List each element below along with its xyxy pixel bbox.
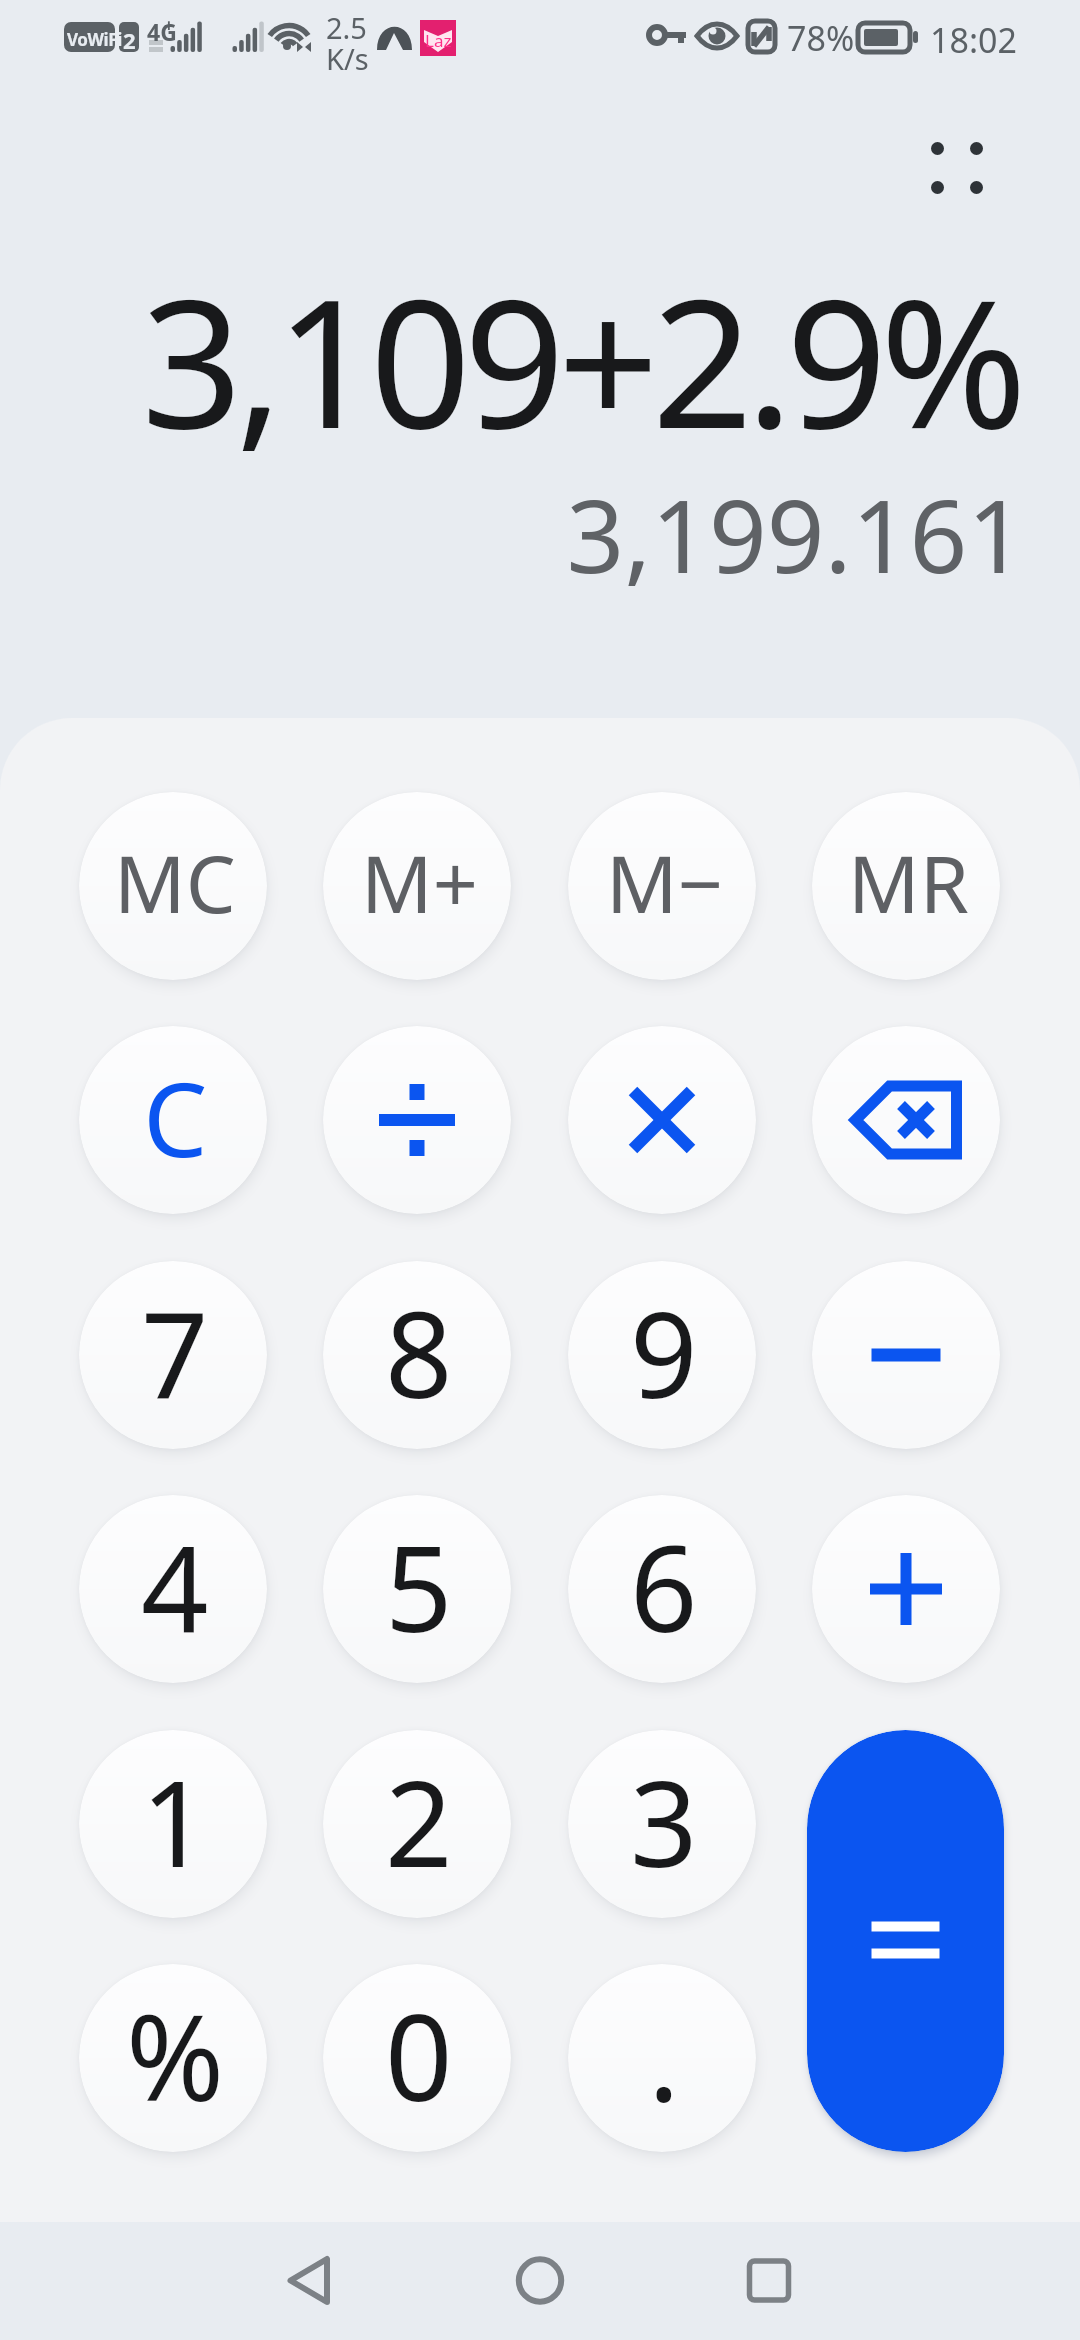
button[interactable]: M−	[568, 792, 756, 980]
staticText: VoWiFi	[67, 28, 122, 51]
staticText: 7	[141, 1272, 209, 1433]
staticText: .	[648, 1975, 680, 2136]
staticText: MR	[848, 829, 969, 937]
staticText: 3,109+2.9%	[0, 239, 1020, 480]
staticText: M−	[606, 829, 723, 937]
button[interactable]	[812, 1261, 1000, 1449]
staticText: 2	[123, 25, 136, 55]
staticText: 9	[630, 1272, 698, 1433]
button[interactable]: 7	[79, 1261, 267, 1449]
staticText: 6	[630, 1506, 698, 1667]
button[interactable]: Divide	[323, 1026, 511, 1214]
button[interactable]: Recents	[709, 2228, 829, 2338]
button[interactable]: 9	[568, 1261, 756, 1449]
staticText: 3,199.161	[0, 465, 1025, 603]
button[interactable]: 8	[323, 1261, 511, 1449]
staticText: MC	[114, 829, 236, 937]
staticText: M+	[361, 829, 478, 937]
button[interactable]: 0	[323, 1964, 511, 2152]
button[interactable]: 2	[323, 1730, 511, 1918]
staticText: 4G	[147, 16, 177, 47]
staticText: +	[164, 14, 174, 37]
button[interactable]: .	[568, 1964, 756, 2152]
staticText: Laz	[425, 29, 452, 52]
staticText: %	[126, 1975, 225, 2136]
button[interactable]: Equals	[807, 1730, 1004, 2152]
button[interactable]: Multiply	[568, 1026, 756, 1214]
button[interactable]: 6	[568, 1495, 756, 1683]
button[interactable]: Back	[250, 2228, 370, 2338]
button[interactable]: More options	[897, 108, 1017, 228]
button[interactable]: 5	[323, 1495, 511, 1683]
button[interactable]: 4	[79, 1495, 267, 1683]
button[interactable]: M+	[323, 792, 511, 980]
staticText: 2.5 K/s	[326, 8, 369, 79]
staticText: 8	[385, 1272, 453, 1433]
button[interactable]	[812, 1495, 1000, 1683]
staticText: 4	[141, 1506, 209, 1667]
staticText: 1	[141, 1741, 209, 1902]
button[interactable]: 1	[79, 1730, 267, 1918]
button[interactable]: MC	[79, 792, 267, 980]
staticText: C	[143, 1048, 208, 1187]
staticText: 2	[385, 1741, 453, 1902]
button[interactable]: C	[79, 1026, 267, 1214]
staticText: 0	[385, 1975, 453, 2136]
button[interactable]: 3	[568, 1730, 756, 1918]
button[interactable]: MR	[812, 792, 1000, 980]
staticText: 78%	[787, 15, 855, 61]
staticText: 5	[385, 1506, 453, 1667]
staticText: 3	[630, 1741, 698, 1902]
button[interactable]: %	[79, 1964, 267, 2152]
button[interactable]: Home	[480, 2228, 600, 2338]
staticText: 18:02	[930, 17, 1017, 63]
button[interactable]: Backspace	[812, 1026, 1000, 1214]
